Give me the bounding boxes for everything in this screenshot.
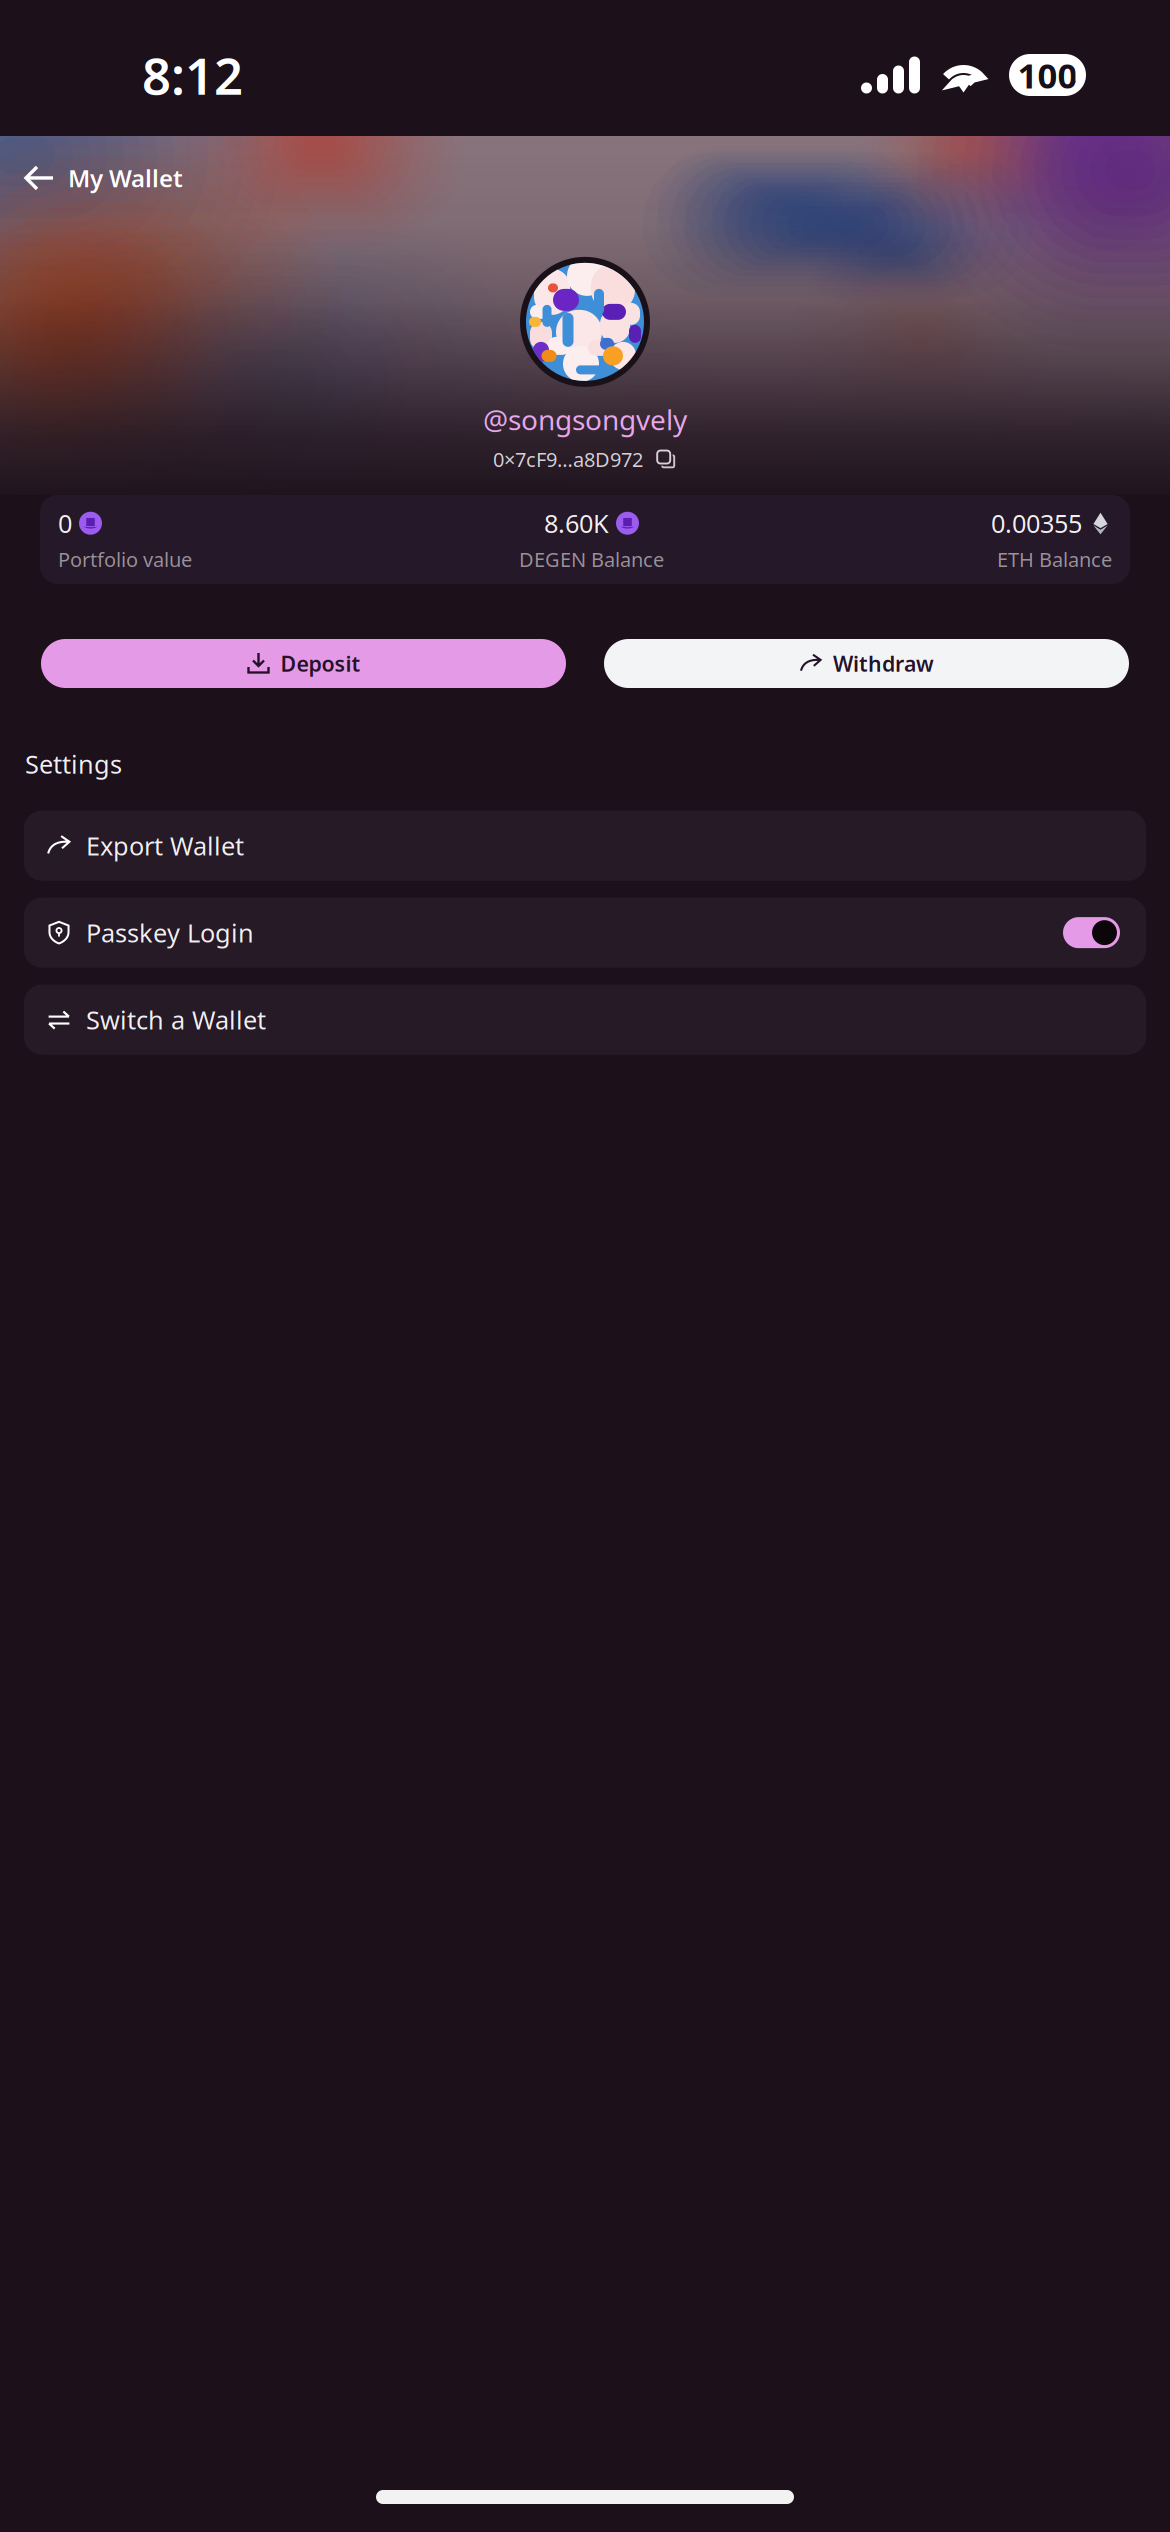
staticText: 100 <box>1017 52 1077 98</box>
staticText: Export Wallet <box>86 829 244 862</box>
button[interactable]: Deposit <box>41 639 566 688</box>
staticText: Portfolio value <box>58 546 192 573</box>
staticText: 0×7cF9…a8D972 <box>493 446 643 473</box>
button[interactable]: Withdraw <box>604 639 1129 688</box>
button[interactable]: Switch a Wallet <box>24 985 1146 1055</box>
staticText: @songsongvely <box>483 401 687 438</box>
staticText: 8.60K <box>544 506 609 540</box>
staticText: Withdraw <box>833 649 934 678</box>
staticText: Settings <box>25 747 122 781</box>
button[interactable]: Passkey Login <box>24 898 1146 968</box>
button[interactable]: My Wallet <box>0 156 183 200</box>
staticText: Passkey Login <box>86 916 254 949</box>
staticText: 0.00355 <box>991 506 1082 540</box>
staticText: DEGEN Balance <box>519 546 664 573</box>
staticText: 0 <box>58 506 72 540</box>
button[interactable]: Export Wallet <box>24 811 1146 881</box>
staticText: ETH Balance <box>997 546 1112 573</box>
staticText: My Wallet <box>68 162 183 194</box>
staticText: Switch a Wallet <box>86 1003 266 1036</box>
staticText: 8:12 <box>142 41 243 109</box>
staticText: Deposit <box>280 649 360 678</box>
